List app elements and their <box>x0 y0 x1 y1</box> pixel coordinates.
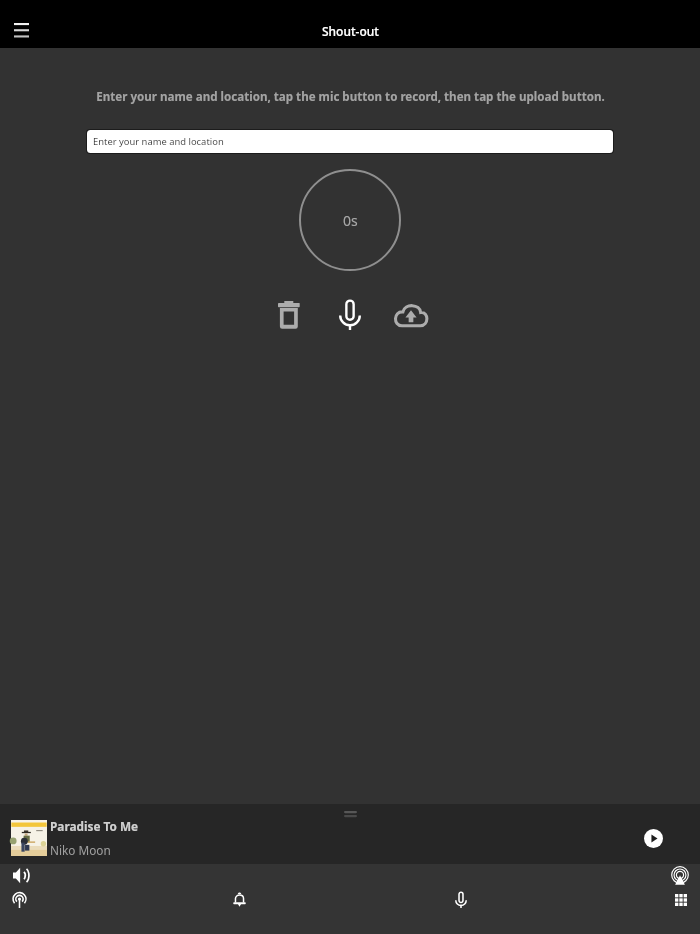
button[interactable]: Delete recording <box>267 293 311 337</box>
button[interactable]: Apps <box>662 881 699 918</box>
button[interactable]: Volume <box>3 857 39 893</box>
staticText: 0s <box>343 211 358 230</box>
button[interactable]: Upload <box>389 293 433 337</box>
button[interactable]: Enter your name and location <box>87 130 613 153</box>
other: Album art <box>11 820 47 856</box>
button[interactable]: Play <box>638 823 668 853</box>
staticText: Shout-out <box>322 23 379 39</box>
button[interactable]: Menu <box>3 12 39 48</box>
button[interactable]: Cast to device <box>662 858 698 894</box>
staticText: Enter your name and location, tap the mi… <box>96 89 605 105</box>
staticText: Paradise To Me <box>50 818 139 834</box>
staticText: Enter your name and location <box>93 135 224 148</box>
button[interactable]: Voice search <box>442 881 479 918</box>
button[interactable]: Podcasts <box>1 881 38 918</box>
button[interactable]: Album art <box>11 818 139 858</box>
staticText: Niko Moon <box>50 842 111 858</box>
button[interactable]: Notifications <box>221 881 258 918</box>
button[interactable]: Record <box>328 293 372 337</box>
